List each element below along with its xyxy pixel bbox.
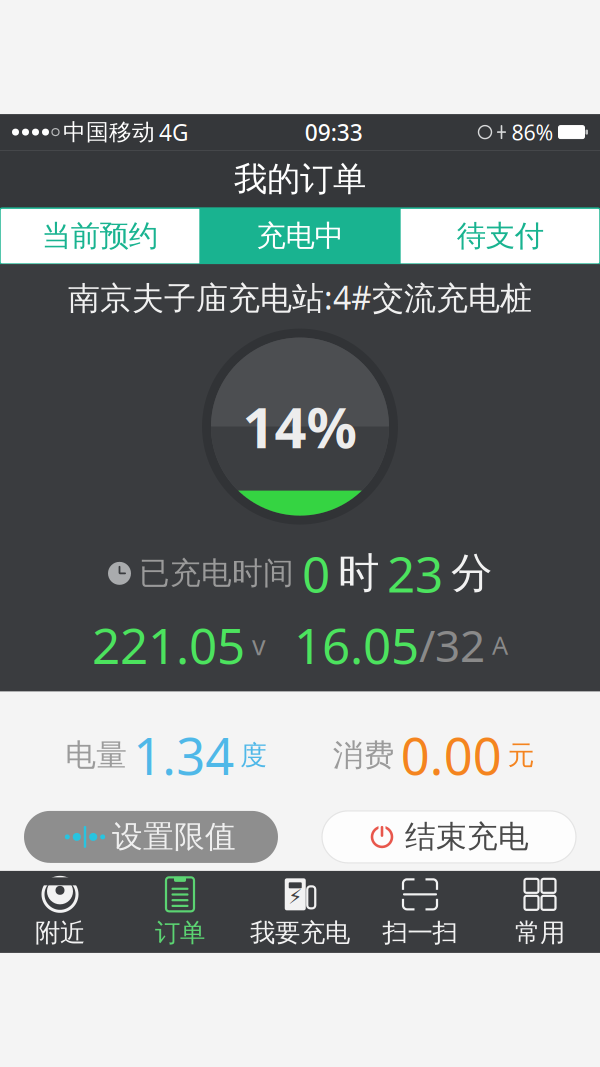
button[interactable]: 附近: [0, 871, 120, 953]
staticText: 附近: [35, 917, 85, 948]
button[interactable]: 扫一扫: [360, 871, 480, 953]
staticText: 常用: [515, 917, 565, 948]
staticText: 0: [302, 541, 330, 606]
staticText: 结束充电: [405, 818, 529, 856]
staticText: 元: [508, 739, 535, 772]
staticText: 已充电时间: [139, 554, 294, 592]
staticText: ⚡︎: [288, 885, 302, 908]
staticText: 分: [451, 548, 492, 599]
staticText: 订单: [155, 917, 205, 948]
staticText: 我的订单: [234, 159, 366, 199]
staticText: 16.05: [294, 612, 419, 678]
staticText: 充电中: [256, 218, 343, 254]
staticText: 我要充电: [250, 917, 350, 948]
button[interactable]: 充电中: [200, 208, 400, 264]
staticText: 0.00: [401, 722, 502, 789]
staticText: 度: [240, 739, 267, 772]
staticText: A: [485, 628, 508, 662]
staticText: 86%: [511, 118, 553, 146]
staticText: 南京夫子庙充电站:4#交流充电桩: [68, 276, 532, 319]
staticText: /32: [419, 616, 485, 674]
button[interactable]: 结束充电: [322, 811, 576, 863]
staticText: 1.34: [133, 722, 234, 789]
staticText: 当前预约: [42, 218, 158, 254]
button[interactable]: 设置限值: [24, 811, 278, 863]
staticText: 电量: [65, 736, 127, 774]
staticText: 4G: [159, 117, 189, 147]
staticText: 扫一扫: [382, 917, 457, 948]
staticText: 中国移动: [63, 118, 155, 146]
staticText: v: [245, 627, 266, 663]
staticText: 23: [387, 541, 443, 606]
staticText: 消费: [333, 736, 395, 774]
staticText: 时: [338, 548, 379, 599]
button[interactable]: ⚡︎: [240, 871, 360, 953]
staticText: 14%: [242, 389, 357, 464]
staticText: 09:33: [305, 117, 363, 147]
staticText: 221.05: [92, 612, 245, 678]
staticText: 待支付: [457, 218, 544, 254]
button[interactable]: 待支付: [401, 208, 600, 264]
button[interactable]: 当前预约: [0, 208, 199, 264]
button[interactable]: 常用: [480, 871, 600, 953]
staticText: 设置限值: [112, 818, 236, 856]
button[interactable]: 订单: [120, 871, 240, 953]
